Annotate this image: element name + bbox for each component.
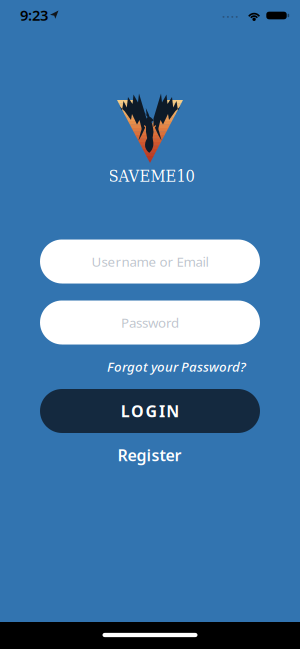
button[interactable]: Password (40, 300, 260, 344)
staticText: SAVEME10 (108, 166, 194, 186)
staticText: Forgot your Password? (107, 358, 246, 375)
button[interactable]: Forgot your Password? (107, 358, 246, 375)
button[interactable]: Register (117, 444, 181, 466)
button[interactable]: L (40, 389, 260, 433)
button[interactable]: Username or Email (40, 239, 260, 283)
staticText: N (166, 400, 179, 422)
staticText: Register (117, 444, 181, 466)
staticText: 9:23 (20, 5, 48, 25)
staticText: I (159, 400, 165, 422)
staticText: Username or Email (91, 253, 208, 270)
staticText: G (145, 400, 157, 422)
staticText: L (121, 400, 130, 422)
staticText: O (131, 400, 144, 422)
staticText: Password (121, 314, 179, 331)
